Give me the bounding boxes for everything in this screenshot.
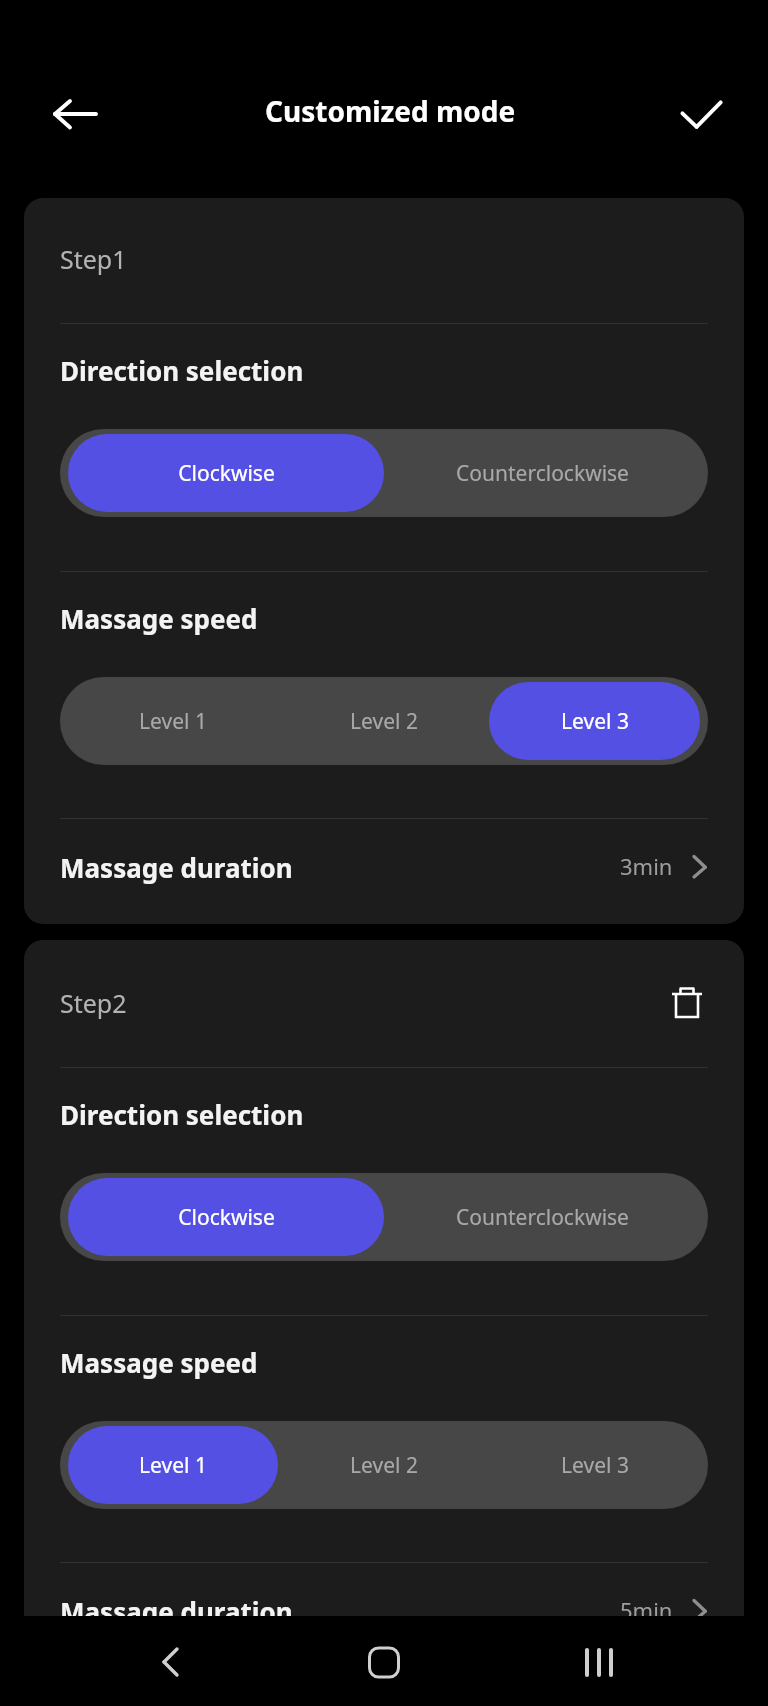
button[interactable]: Massage duration [24, 1562, 744, 1616]
staticText: Step1 [60, 242, 127, 276]
staticText: Counterclockwise [456, 459, 629, 488]
button[interactable]: Level 1 [68, 682, 278, 760]
staticText: Level 3 [561, 1451, 629, 1480]
staticText: Level 2 [350, 1451, 418, 1480]
staticText: Massage speed [60, 601, 258, 636]
button[interactable]: Level 2 [278, 682, 489, 760]
staticText: Customized mode [265, 92, 516, 130]
staticText: Counterclockwise [456, 1203, 629, 1232]
button[interactable]: Delete step [655, 971, 719, 1035]
staticText: Massage duration [60, 850, 293, 885]
button[interactable]: Back [130, 1621, 210, 1701]
button[interactable]: Level 1 [68, 1426, 278, 1504]
staticText: 3min [620, 851, 673, 881]
staticText: Clockwise [178, 459, 275, 488]
button[interactable]: Clockwise [68, 434, 384, 512]
button[interactable]: Massage duration [24, 818, 744, 924]
button[interactable]: Level 3 [489, 682, 700, 760]
staticText: Massage duration [60, 1594, 293, 1616]
staticText: Level 3 [561, 707, 629, 736]
button[interactable]: Level 2 [278, 1426, 489, 1504]
button[interactable]: Recent apps [559, 1621, 639, 1701]
staticText: Step2 [60, 986, 127, 1020]
staticText: Direction selection [60, 353, 304, 388]
button[interactable]: Back [30, 70, 118, 158]
staticText: Direction selection [60, 1097, 304, 1132]
staticText: Level 1 [139, 707, 207, 736]
button[interactable]: Confirm [658, 70, 746, 158]
staticText: Level 2 [350, 707, 418, 736]
staticText: Clockwise [178, 1203, 275, 1232]
button[interactable]: Counterclockwise [384, 434, 700, 512]
staticText: 5min [620, 1595, 673, 1616]
staticText: Massage speed [60, 1345, 258, 1380]
button[interactable]: Clockwise [68, 1178, 384, 1256]
button[interactable]: Level 3 [489, 1426, 700, 1504]
button[interactable]: Home [344, 1621, 424, 1701]
staticText: Level 1 [139, 1451, 207, 1480]
button[interactable]: Counterclockwise [384, 1178, 700, 1256]
